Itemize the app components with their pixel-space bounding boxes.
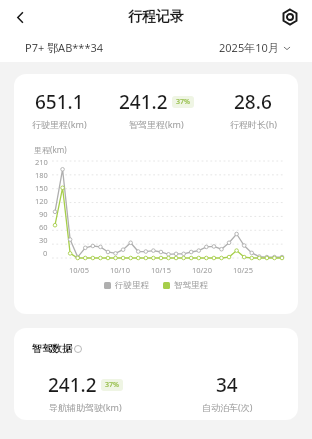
staticText: 自动泊车(次) (202, 401, 253, 413)
staticText: 10/05 (69, 265, 89, 275)
staticText: 120 (35, 196, 48, 206)
staticText: 2025年10月 (219, 40, 279, 55)
staticText: P7+ 鄂AB***34 (25, 40, 104, 55)
staticText: 37% (105, 380, 119, 390)
staticText: 60 (39, 222, 48, 232)
staticText: 行驶里程(km) (32, 118, 87, 130)
staticText: 28.6 (234, 89, 272, 115)
button[interactable]: Settings (277, 4, 303, 30)
staticText: 150 (35, 183, 48, 193)
staticText: 180 (35, 170, 48, 180)
staticText: 210 (35, 157, 48, 167)
staticText: 行驶里程 (115, 280, 149, 291)
staticText: 10/15 (151, 265, 171, 275)
staticText: 30 (39, 235, 48, 245)
button[interactable]: 2025年10月 (219, 40, 291, 55)
staticText: 10/10 (110, 265, 130, 275)
staticText: 智驾里程(km) (129, 118, 184, 130)
staticText: 行程记录 (128, 8, 184, 26)
staticText: 90 (39, 209, 48, 219)
staticText: 行程时长(h) (230, 118, 277, 130)
staticText: 里程(km) (34, 144, 67, 155)
button[interactable]: Back (6, 3, 34, 31)
staticText: 10/25 (233, 265, 253, 275)
staticText: 智驾数据 (32, 342, 72, 355)
staticText: 导航辅助驾驶(km) (49, 401, 122, 413)
staticText: 37% (176, 97, 190, 107)
staticText: 10/20 (192, 265, 212, 275)
staticText: 智驾里程 (174, 280, 208, 291)
staticText: 241.2 (119, 89, 168, 115)
staticText: 651.1 (35, 89, 84, 115)
staticText: 34 (216, 372, 238, 398)
staticText: 241.2 (48, 372, 97, 398)
staticText: 0 (43, 248, 48, 258)
